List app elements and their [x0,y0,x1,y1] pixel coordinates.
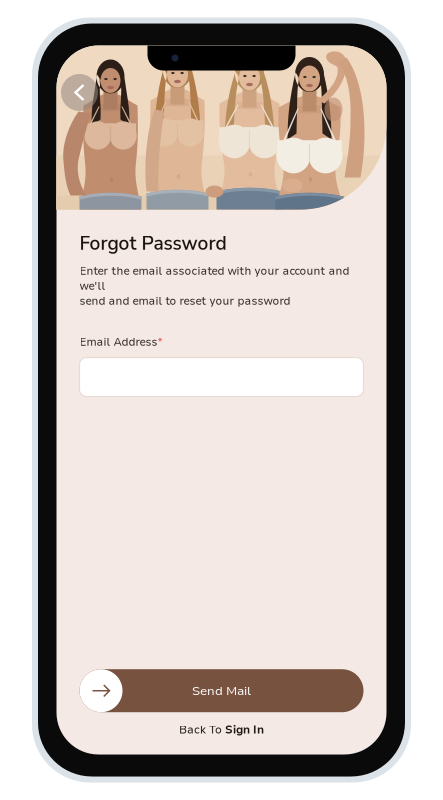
staticText: * [157,334,162,349]
staticText: Back To [179,722,225,737]
button[interactable]: Back [57,70,101,114]
button[interactable]: Send Mail [79,669,363,712]
button[interactable]: Back To [179,722,264,737]
staticText: Sign In [225,722,264,737]
staticText: Enter the email associated with your acc… [79,263,349,308]
staticText: Email Address [79,334,157,349]
staticText: Send Mail [192,682,251,699]
staticText: Forgot Password [79,230,226,256]
